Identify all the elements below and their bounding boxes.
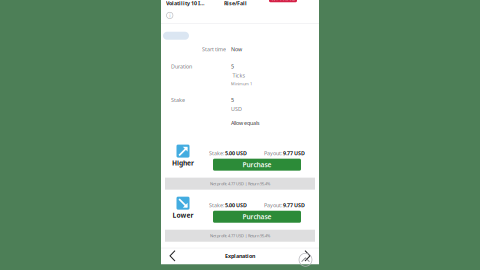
button[interactable]: Next section [302, 248, 313, 264]
staticText: Purchase [242, 160, 271, 169]
button[interactable]: Trade type [163, 32, 189, 40]
button[interactable]: Contract info [166, 12, 173, 19]
staticText: 5 [231, 63, 234, 70]
staticText: i [169, 12, 170, 19]
staticText: Now [231, 46, 242, 53]
button[interactable]: Previous section [167, 248, 178, 264]
button[interactable]: Purchase [213, 211, 301, 223]
staticText: 9.77 USD [283, 150, 305, 157]
button[interactable]: Scroll to top [299, 253, 312, 266]
staticText: 9.77 USD [283, 202, 305, 209]
staticText: 5 [231, 96, 234, 103]
staticText: Duration [171, 63, 192, 70]
staticText: Explanation [225, 252, 255, 259]
staticText: Payout: [264, 202, 283, 209]
staticText: Higher [172, 159, 194, 167]
staticText: Volatility 10 I… [166, 0, 205, 7]
button[interactable]: Allow equals [231, 119, 260, 127]
staticText: Net profit: 4.77 USD | Return 95.4% [210, 233, 270, 238]
staticText: 6,716.502 [271, 0, 295, 2]
staticText: Stake: [209, 150, 225, 157]
staticText: Purchase [242, 212, 271, 221]
staticText: 5.00 USD [225, 202, 247, 209]
staticText: Payout: [264, 150, 283, 157]
staticText: Net profit: 4.77 USD | Return 95.4% [210, 181, 270, 186]
staticText: Allow equals [231, 119, 260, 127]
staticText: Stake [171, 96, 185, 103]
staticText: 5.00 USD [225, 150, 247, 157]
staticText: Stake: [209, 202, 225, 209]
staticText: USD [231, 105, 242, 112]
staticText: Lower [172, 211, 193, 220]
button[interactable]: Purchase [213, 159, 301, 171]
staticText: Minimum 1 [231, 81, 252, 86]
staticText: Start time [202, 46, 226, 53]
staticText: Ticks [232, 72, 245, 79]
staticText: Rise/Fall [224, 0, 247, 7]
